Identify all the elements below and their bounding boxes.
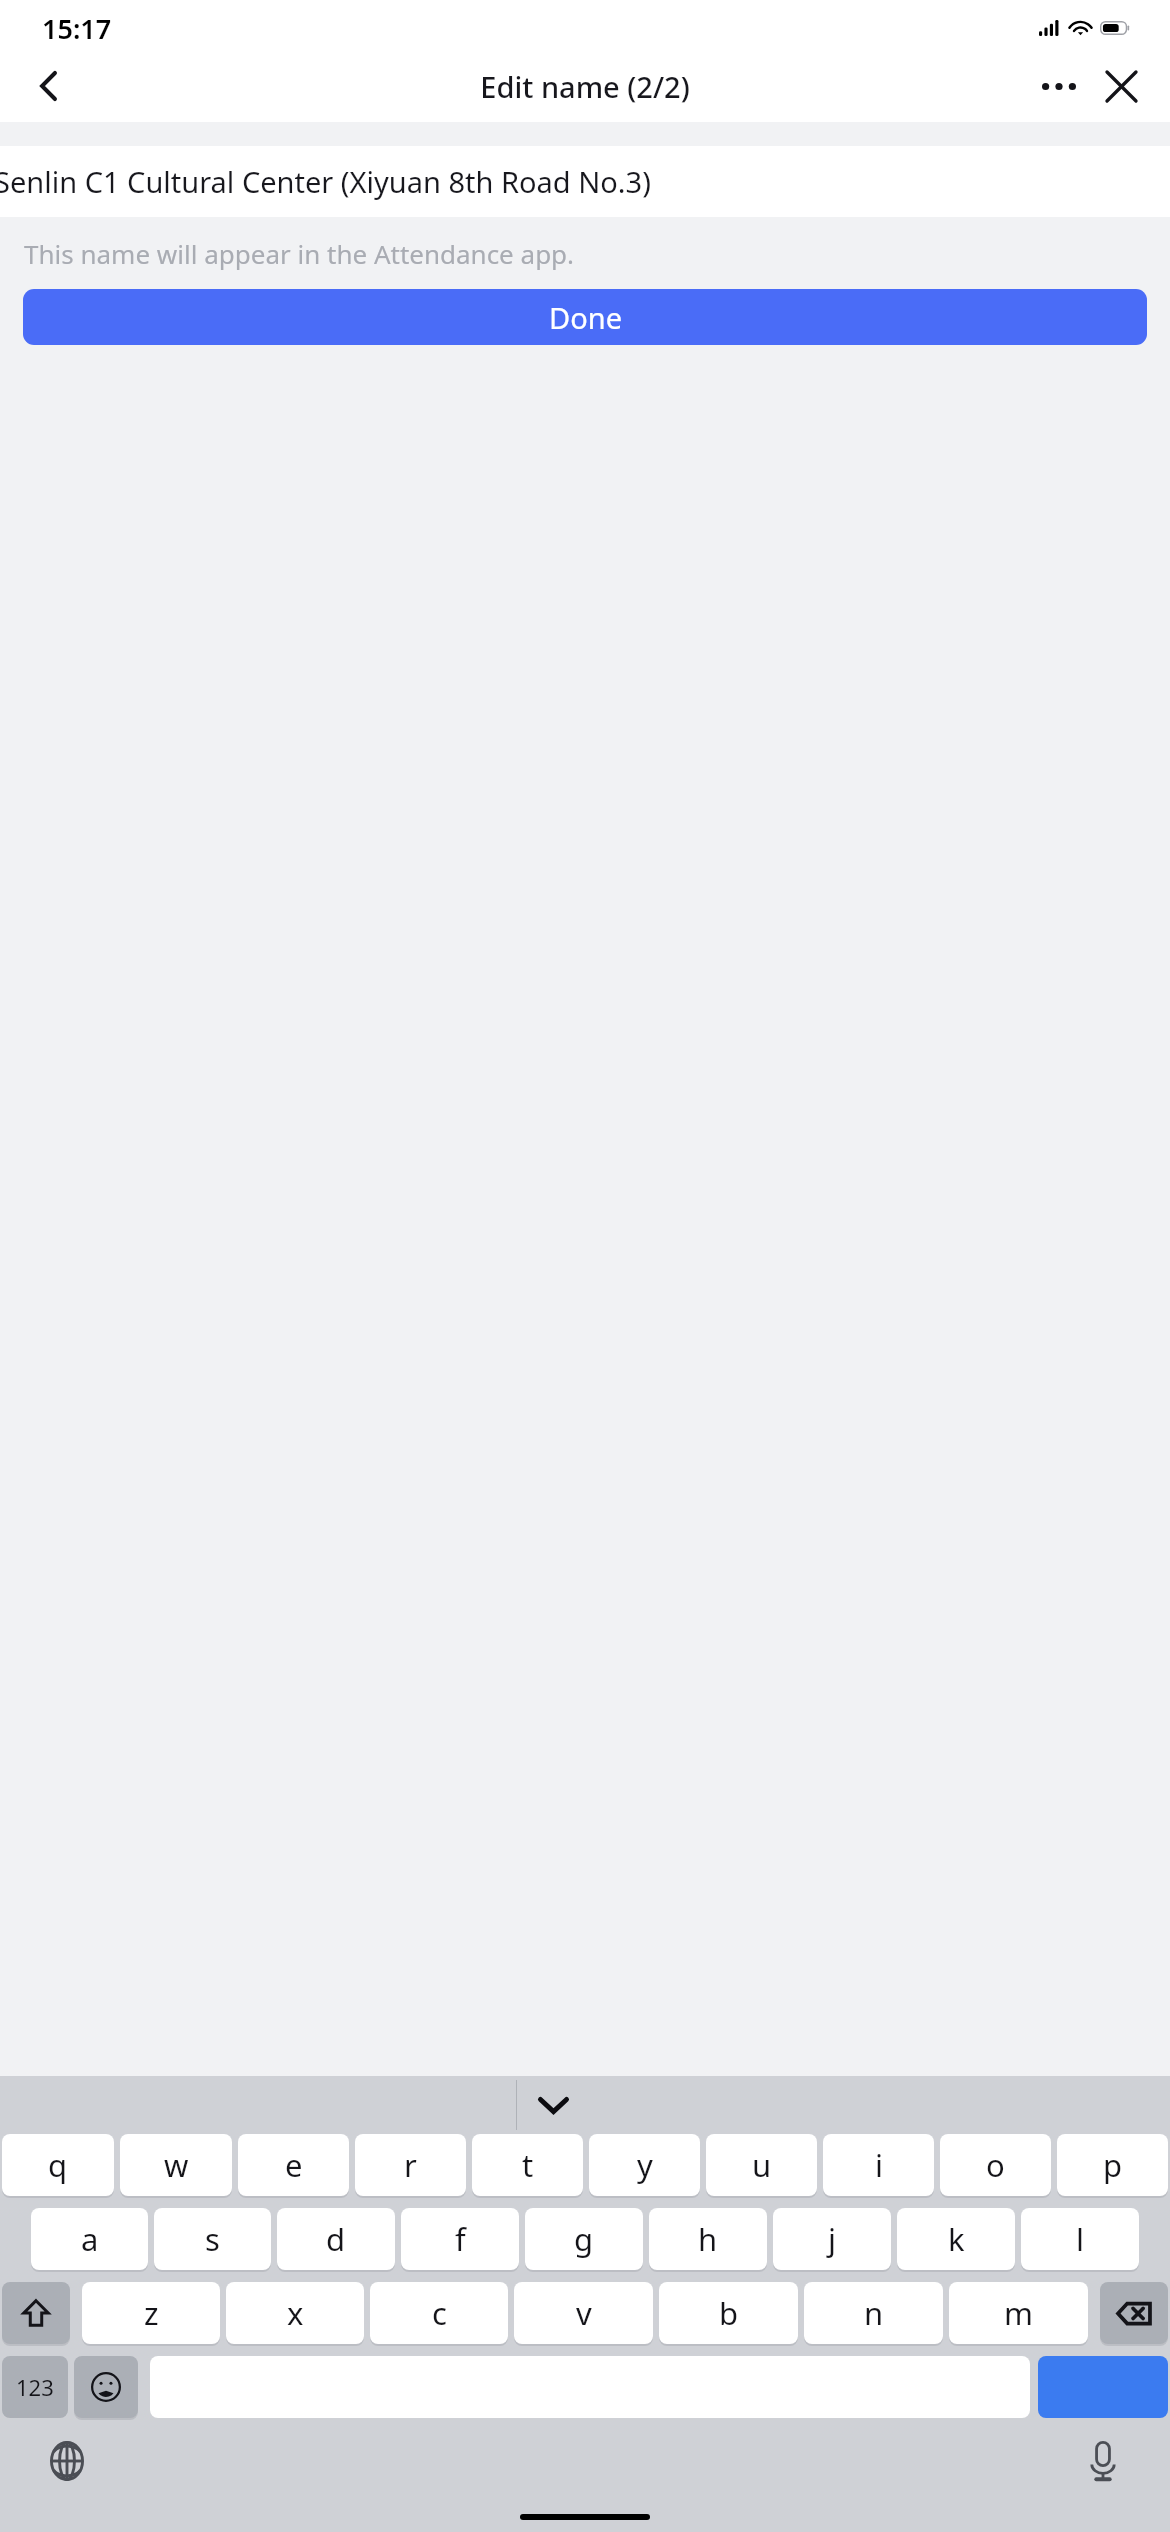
- staticText: a: [81, 2218, 99, 2260]
- staticText: x: [287, 2292, 304, 2334]
- button[interactable]: Senlin C1 Cultural Center (Xiyuan 8th Ro…: [0, 146, 1170, 217]
- button[interactable]: a: [31, 2208, 148, 2270]
- staticText: e: [285, 2144, 303, 2186]
- staticText: p: [1103, 2144, 1123, 2186]
- staticText: g: [574, 2218, 594, 2260]
- staticText: l: [1076, 2218, 1084, 2260]
- staticText: f: [455, 2218, 466, 2260]
- staticText: c: [432, 2292, 447, 2334]
- staticText: z: [144, 2292, 159, 2334]
- staticText: d: [326, 2218, 346, 2260]
- button[interactable]: n: [804, 2282, 943, 2344]
- button[interactable]: Voice input: [1078, 2436, 1128, 2486]
- button[interactable]: y: [589, 2134, 700, 2196]
- button[interactable]: Close: [1090, 55, 1152, 117]
- button[interactable]: 123: [2, 2356, 68, 2418]
- button[interactable]: t: [472, 2134, 583, 2196]
- button[interactable]: o: [940, 2134, 1051, 2196]
- button[interactable]: f: [401, 2208, 519, 2270]
- button[interactable]: q: [2, 2134, 114, 2196]
- button[interactable]: z: [82, 2282, 220, 2344]
- button[interactable]: Emoji: [74, 2356, 138, 2418]
- staticText: h: [698, 2218, 718, 2260]
- button[interactable]: p: [1057, 2134, 1168, 2196]
- staticText: v: [576, 2292, 592, 2334]
- button[interactable]: g: [525, 2208, 643, 2270]
- button[interactable]: d: [277, 2208, 395, 2270]
- button[interactable]: x: [226, 2282, 364, 2344]
- button[interactable]: Shift: [2, 2282, 70, 2344]
- button[interactable]: Return: [1038, 2356, 1168, 2418]
- staticText: w: [164, 2144, 189, 2186]
- staticText: b: [719, 2292, 739, 2334]
- staticText: u: [752, 2144, 772, 2186]
- staticText: i: [875, 2144, 883, 2186]
- button[interactable]: Done: [23, 289, 1147, 345]
- staticText: j: [828, 2218, 836, 2260]
- button[interactable]: More options: [1028, 55, 1090, 117]
- staticText: m: [1004, 2292, 1033, 2334]
- staticText: r: [404, 2144, 417, 2186]
- staticText: s: [205, 2218, 220, 2260]
- staticText: n: [864, 2292, 884, 2334]
- button[interactable]: Back: [18, 56, 78, 116]
- button[interactable]: i: [823, 2134, 934, 2196]
- button[interactable]: s: [154, 2208, 271, 2270]
- staticText: k: [948, 2218, 965, 2260]
- staticText: q: [48, 2144, 68, 2186]
- button[interactable]: Backspace: [1100, 2282, 1168, 2344]
- staticText: t: [522, 2144, 534, 2186]
- button[interactable]: l: [1021, 2208, 1139, 2270]
- button[interactable]: m: [949, 2282, 1088, 2344]
- staticText: 123: [16, 2372, 54, 2402]
- button[interactable]: Change keyboard language: [42, 2436, 92, 2486]
- button[interactable]: c: [370, 2282, 508, 2344]
- button[interactable]: r: [355, 2134, 466, 2196]
- button[interactable]: w: [120, 2134, 232, 2196]
- staticText: y: [637, 2144, 653, 2186]
- staticText: Senlin C1 Cultural Center (Xiyuan 8th Ro…: [0, 162, 651, 201]
- button[interactable]: k: [897, 2208, 1015, 2270]
- staticText: o: [986, 2144, 1005, 2186]
- staticText: 15:17: [42, 10, 112, 47]
- staticText: Edit name (2/2): [480, 67, 690, 106]
- button[interactable]: u: [706, 2134, 817, 2196]
- staticText: This name will appear in the Attendance …: [24, 236, 575, 271]
- button[interactable]: Hide keyboard: [530, 2082, 576, 2128]
- button[interactable]: v: [514, 2282, 653, 2344]
- button[interactable]: j: [773, 2208, 891, 2270]
- staticText: Done: [549, 298, 622, 337]
- button[interactable]: e: [238, 2134, 349, 2196]
- button[interactable]: b: [659, 2282, 798, 2344]
- button[interactable]: h: [649, 2208, 767, 2270]
